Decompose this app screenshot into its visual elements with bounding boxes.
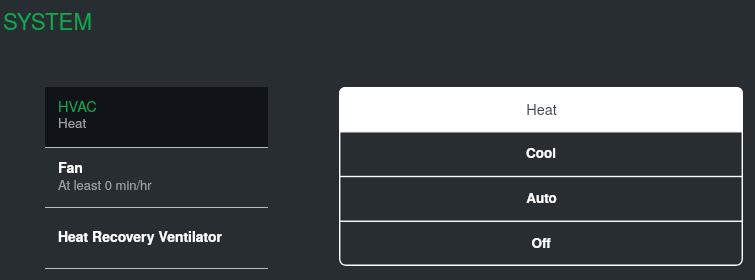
staticText: Heat Recovery Ventilator [58, 226, 223, 246]
button[interactable]: Auto [339, 176, 743, 221]
staticText: Fan [58, 157, 83, 177]
staticText: Off [531, 233, 551, 252]
staticText: Cool [526, 143, 556, 162]
button[interactable]: Fan [45, 148, 268, 207]
staticText: HVAC [58, 95, 97, 116]
button[interactable]: Heat Recovery Ventilator [45, 208, 268, 268]
button[interactable]: Heat [339, 87, 743, 131]
staticText: Heat [58, 113, 87, 132]
button[interactable]: Cool [339, 131, 743, 176]
staticText: At least 0 min/hr [58, 175, 152, 194]
staticText: Auto [526, 188, 557, 207]
staticText: SYSTEM [3, 4, 93, 36]
button[interactable]: HVAC [45, 87, 268, 147]
staticText: Heat [526, 98, 557, 119]
button[interactable]: Off [339, 221, 743, 266]
